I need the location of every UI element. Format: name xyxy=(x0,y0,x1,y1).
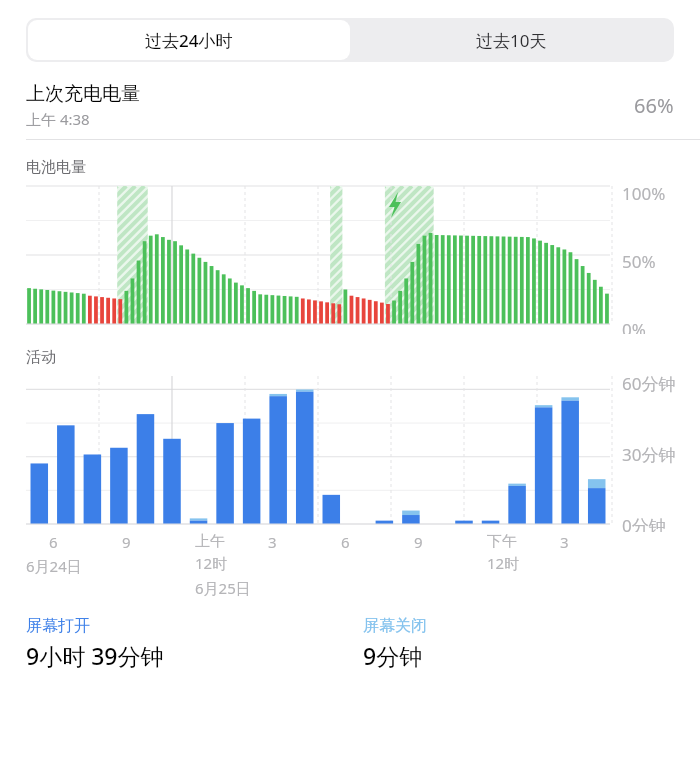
staticText: 12时 xyxy=(487,553,520,573)
staticText: 50% xyxy=(622,250,656,273)
staticText: 60分钟 xyxy=(622,372,676,395)
staticText: 0% xyxy=(622,318,646,334)
staticText: 30分钟 xyxy=(622,443,676,466)
staticText: 活动 xyxy=(26,348,56,367)
staticText: 上次充电电量 xyxy=(26,82,140,106)
staticText: 屏幕关闭 xyxy=(363,616,427,636)
staticText: 3 xyxy=(268,532,277,552)
staticText: 下午 xyxy=(487,532,517,551)
staticText: 屏幕打开 xyxy=(26,616,90,636)
staticText: 9小时 39分钟 xyxy=(26,640,164,671)
staticText: 9 xyxy=(414,532,423,552)
staticText: 66% xyxy=(634,92,674,119)
staticText: 3 xyxy=(560,532,569,552)
staticText: 12时 xyxy=(195,553,228,573)
staticText: 9分钟 xyxy=(363,640,423,671)
staticText: 6月25日 xyxy=(195,578,251,598)
button[interactable]: 上次充电电量 xyxy=(26,82,674,129)
staticText: 上午 4:38 xyxy=(26,109,90,129)
staticText: 0分钟 xyxy=(622,514,666,532)
button[interactable]: 屏幕打开 xyxy=(26,616,363,671)
staticText: 过去24小时 xyxy=(145,29,233,52)
staticText: 9 xyxy=(122,532,131,552)
button[interactable]: 屏幕关闭 xyxy=(363,616,700,671)
staticText: 100% xyxy=(622,182,666,205)
staticText: 6月24日 xyxy=(26,556,82,576)
button[interactable]: 过去10天 xyxy=(350,20,672,60)
staticText: 6 xyxy=(49,532,58,552)
staticText: 电池电量 xyxy=(26,158,86,177)
staticText: 6 xyxy=(341,532,350,552)
staticText: 上午 xyxy=(195,532,225,551)
button[interactable]: 过去24小时 xyxy=(28,20,350,60)
staticText: 过去10天 xyxy=(476,29,547,52)
